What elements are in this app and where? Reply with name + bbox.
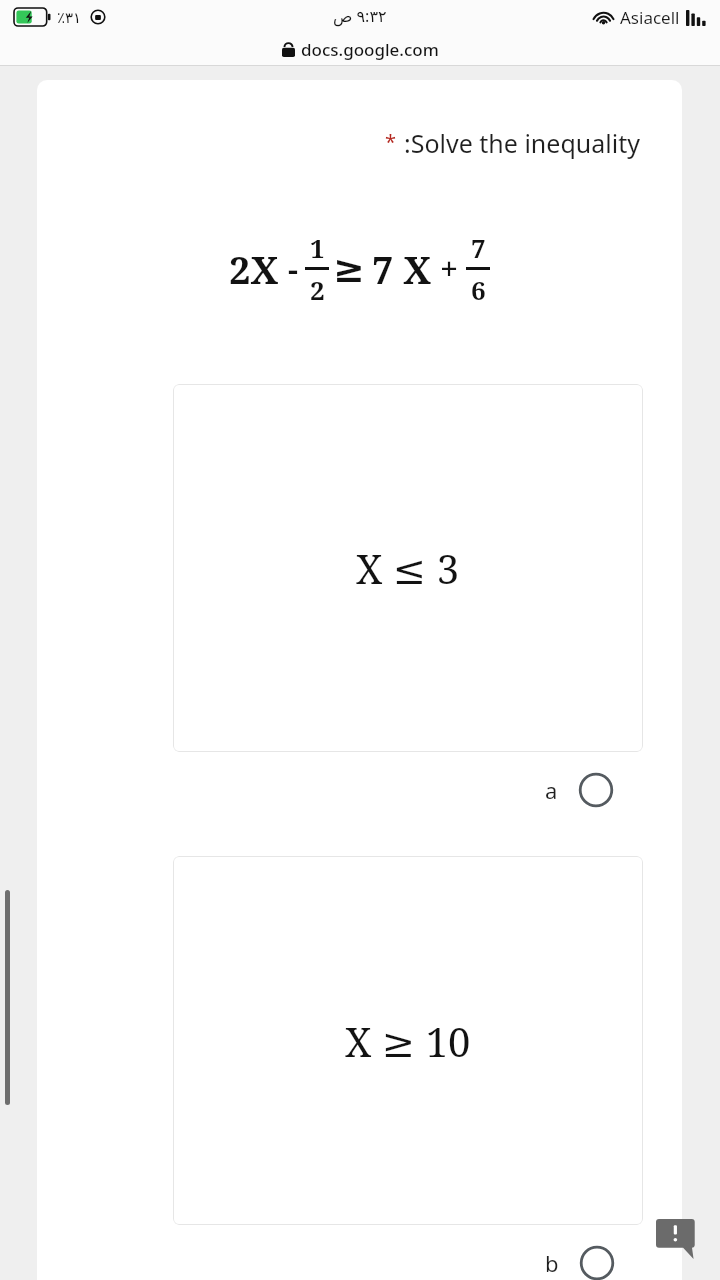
staticText: 7 xyxy=(471,230,486,265)
button[interactable]: a xyxy=(537,764,622,816)
staticText: ≥ xyxy=(333,246,365,291)
staticText: 1 xyxy=(310,230,325,265)
staticText: 2X xyxy=(229,243,279,295)
staticText: X ≤ 3 xyxy=(356,541,460,595)
staticText: ٩:٣٢ ص xyxy=(333,5,387,27)
staticText: 7 X xyxy=(372,243,432,295)
staticText: b xyxy=(545,1248,559,1278)
staticText: a xyxy=(545,775,558,805)
button[interactable]: docs.google.com xyxy=(0,34,720,64)
staticText: docs.google.com xyxy=(301,38,439,61)
button[interactable]: b xyxy=(537,1237,623,1280)
staticText: Asiacell xyxy=(620,6,680,29)
staticText: X ≥ 10 xyxy=(345,1014,471,1068)
staticText: :Solve the inequality xyxy=(404,126,640,160)
staticText: - xyxy=(288,247,298,291)
staticText: 6 xyxy=(471,272,486,307)
staticText: ٪٣١ xyxy=(57,9,82,26)
button[interactable]: Send feedback xyxy=(656,1219,700,1259)
staticText: + xyxy=(440,247,459,291)
staticText: 2 xyxy=(310,272,325,307)
staticText: * xyxy=(385,128,397,155)
